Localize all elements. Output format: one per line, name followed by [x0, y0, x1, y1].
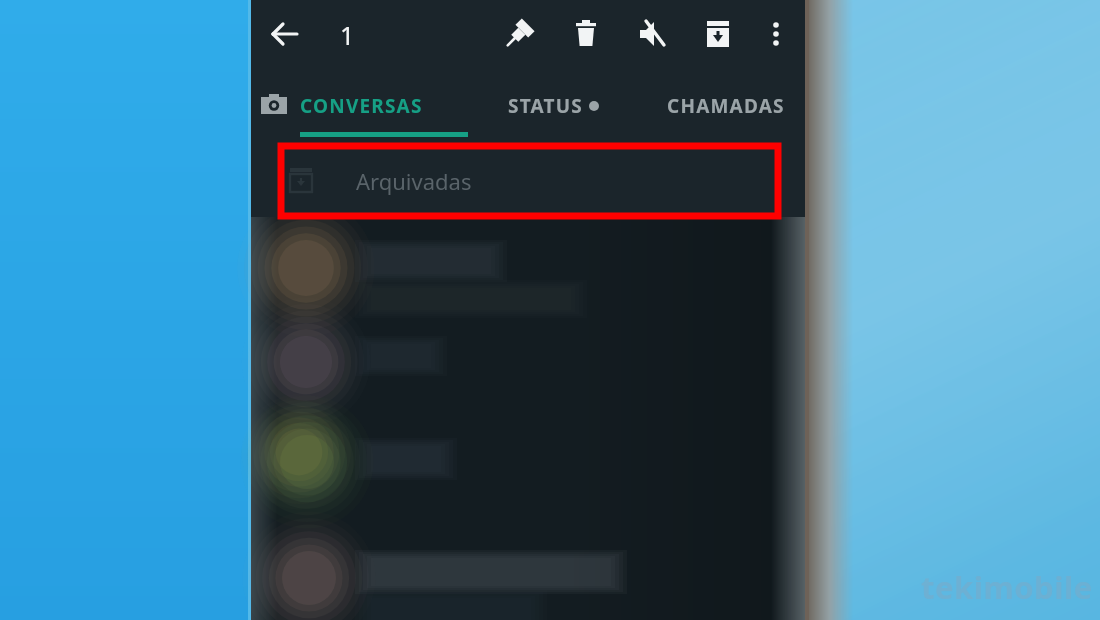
staticText: CHAMADAS	[667, 93, 785, 119]
button[interactable]: Back	[265, 14, 305, 54]
button[interactable]	[281, 146, 778, 216]
button[interactable]	[478, 80, 626, 140]
button[interactable]: Pin	[499, 14, 539, 54]
button[interactable]: Camera	[255, 86, 295, 130]
button[interactable]: Archive	[698, 14, 738, 54]
staticText: 1	[340, 18, 355, 52]
button[interactable]	[646, 80, 801, 140]
staticText: STATUS	[508, 93, 583, 119]
button[interactable]: Mute	[632, 14, 672, 54]
button[interactable]	[300, 80, 468, 140]
button[interactable]: More options	[757, 14, 795, 54]
button[interactable]: Delete	[566, 14, 606, 54]
staticText: tekimobile	[921, 566, 1093, 608]
staticText: CONVERSAS	[300, 93, 423, 119]
staticText: Arquivadas	[356, 166, 472, 196]
